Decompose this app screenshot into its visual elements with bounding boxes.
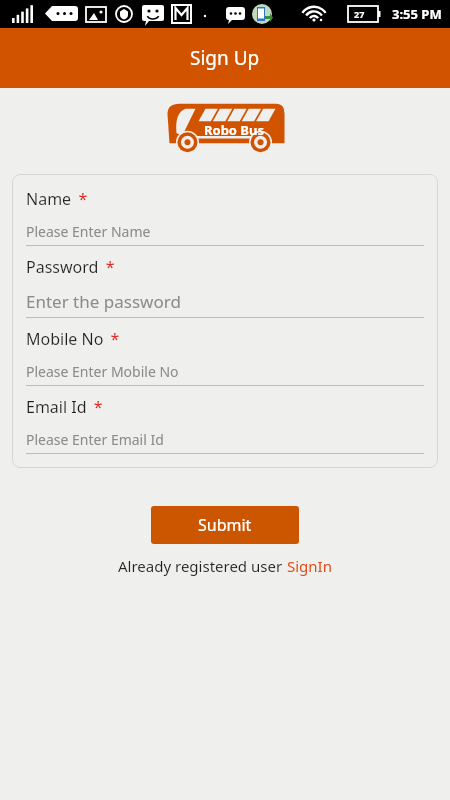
staticText: Robo Bus <box>204 121 264 139</box>
button[interactable]: Please Enter Email Id <box>26 430 424 454</box>
staticText: Enter the password <box>26 290 181 313</box>
button[interactable]: Please Enter Mobile No <box>26 362 424 386</box>
staticText: Mobile No * <box>26 328 120 350</box>
button[interactable]: SignIn <box>287 556 332 576</box>
staticText: Please Enter Name <box>26 222 151 241</box>
staticText: 27 <box>354 8 365 20</box>
button[interactable]: Enter the password <box>26 290 424 318</box>
staticText: 3:55 PM <box>392 5 442 23</box>
staticText: Name * <box>26 188 88 210</box>
staticText: Email Id * <box>26 396 103 418</box>
staticText: Already registered user <box>118 556 287 576</box>
button[interactable]: Please Enter Name <box>26 222 424 246</box>
staticText: SignIn <box>287 556 332 576</box>
staticText: Please Enter Mobile No <box>26 362 179 381</box>
staticText: Submit <box>198 514 252 536</box>
staticText: Please Enter Email Id <box>26 430 164 449</box>
staticText: Sign Up <box>190 45 260 71</box>
staticText: Password * <box>26 256 115 278</box>
button[interactable]: Submit <box>151 506 299 544</box>
